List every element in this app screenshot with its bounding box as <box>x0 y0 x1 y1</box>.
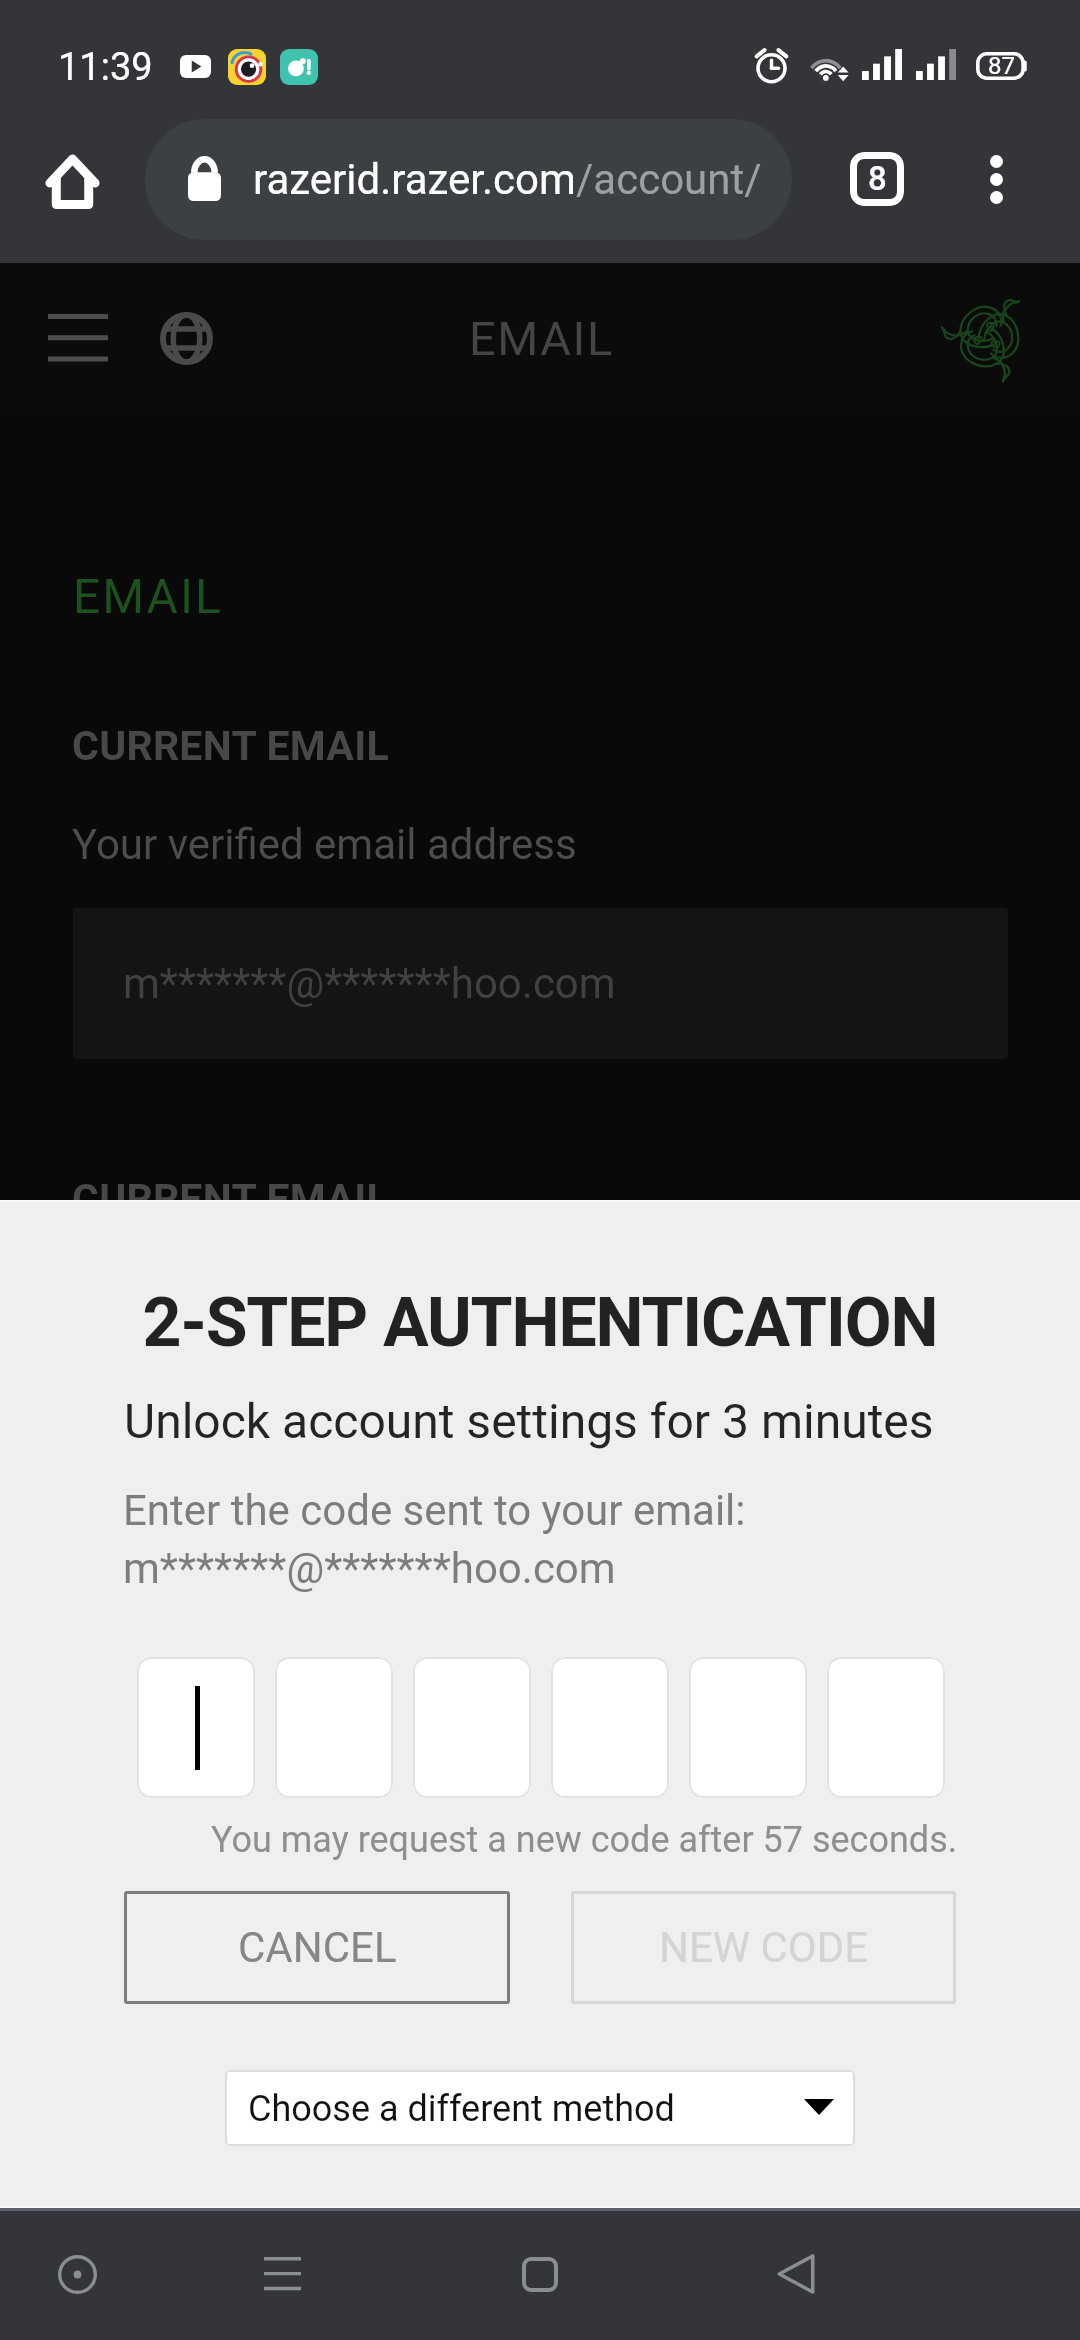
staticText: EMAIL <box>73 568 223 624</box>
staticText: CURRENT EMAIL <box>72 1175 390 1223</box>
staticText: CANCEL <box>238 1923 397 1972</box>
button[interactable]: Screen record <box>27 2224 127 2324</box>
staticText: 8 <box>868 159 887 198</box>
button[interactable]: More options <box>954 137 1038 221</box>
button[interactable] <box>275 1657 393 1798</box>
button[interactable]: Recent apps <box>232 2224 332 2324</box>
button[interactable]: NEW CODE <box>571 1891 956 2004</box>
button[interactable]: Back <box>746 2224 846 2324</box>
staticText: Enter the code sent to your email: m****… <box>123 1486 746 1593</box>
staticText: 2-STEP AUTHENTICATION <box>0 1283 1080 1363</box>
staticText: EMAIL <box>469 311 614 366</box>
button[interactable]: Open tabs <box>835 137 919 221</box>
staticText: 11:39 <box>58 45 153 90</box>
staticText: Unlock account settings for 3 minutes <box>124 1393 934 1449</box>
button[interactable]: razerid.razer.com <box>145 119 792 240</box>
staticText: 87 <box>988 52 1015 80</box>
button[interactable] <box>827 1657 945 1798</box>
button[interactable]: Home <box>30 140 114 224</box>
staticText: Choose a different method <box>248 2088 675 2130</box>
staticText: /account/ <box>576 155 762 204</box>
staticText: CURRENT EMAIL <box>72 722 390 770</box>
button[interactable]: Home <box>490 2224 590 2324</box>
staticText: You may request a new code after 57 seco… <box>211 1819 958 1861</box>
button[interactable] <box>689 1657 807 1798</box>
staticText: m*******@*******hoo.com <box>123 959 616 1008</box>
button[interactable] <box>413 1657 531 1798</box>
button[interactable] <box>551 1657 669 1798</box>
button[interactable]: Choose a different method <box>225 2070 855 2146</box>
button[interactable]: CANCEL <box>124 1891 510 2004</box>
staticText: NEW CODE <box>659 1923 869 1972</box>
staticText: razerid.razer.com <box>253 155 576 204</box>
button[interactable] <box>137 1657 255 1798</box>
staticText: Your verified email address <box>72 820 577 869</box>
